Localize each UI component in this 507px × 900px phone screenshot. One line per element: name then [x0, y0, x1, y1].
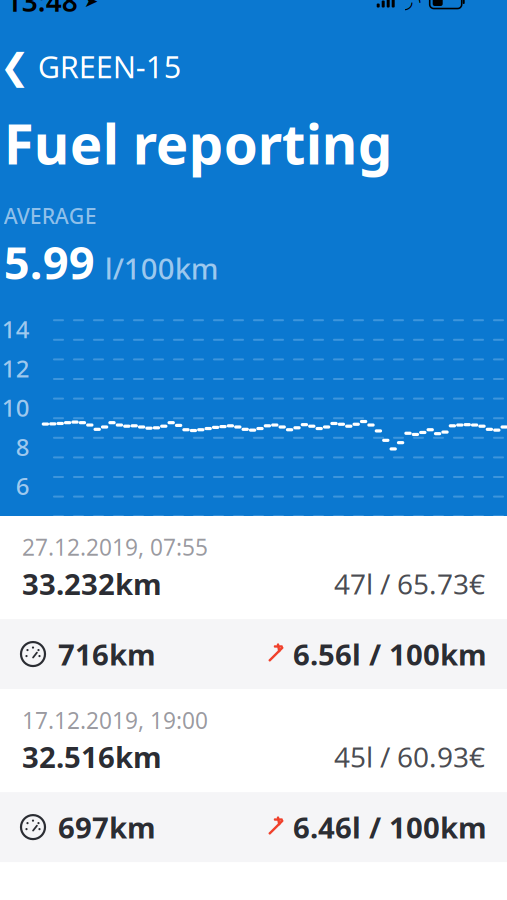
staticText: ❮ [0, 46, 30, 87]
button[interactable]: 716km [0, 619, 507, 689]
staticText: 8 [16, 431, 30, 463]
staticText: 32.516km [22, 737, 162, 776]
staticText: 14 [2, 313, 30, 345]
staticText: 33.232km [22, 564, 162, 603]
button[interactable]: 27.12.2019, 07:55 [0, 516, 507, 619]
staticText: GREEN-15 [38, 46, 182, 87]
staticText: 27.12.2019, 07:55 [22, 532, 208, 562]
button[interactable]: ❮ [0, 40, 200, 93]
staticText: 6.56l / 100km [293, 635, 487, 674]
staticText: 10 [2, 391, 30, 423]
button[interactable]: 17.12.2019, 19:00 [0, 689, 507, 792]
button[interactable]: 697km [0, 792, 507, 862]
staticText: 697km [58, 808, 156, 847]
staticText: 716km [58, 635, 156, 674]
staticText: ➤ [78, 0, 99, 11]
staticText: 47l / 65.73€ [334, 565, 485, 602]
staticText: AVERAGE [4, 201, 97, 230]
staticText: 4 [16, 509, 30, 541]
staticText: 6.46l / 100km [293, 808, 487, 847]
staticText: Fuel reporting [4, 107, 393, 179]
staticText: 12 [2, 352, 30, 384]
staticText: 17.12.2019, 19:00 [22, 705, 208, 735]
staticText: ◞◝ [405, 0, 421, 12]
staticText: l/100km [105, 249, 219, 288]
staticText: 45l / 60.93€ [334, 738, 485, 775]
staticText: 6 [16, 470, 30, 502]
staticText: 5.99 [4, 232, 95, 292]
staticText: 13:48 [6, 0, 78, 20]
